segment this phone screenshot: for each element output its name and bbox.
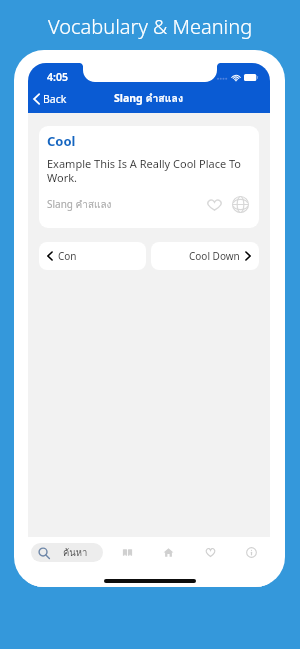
- button[interactable]: ค้นหา: [31, 543, 103, 562]
- staticText: Vocabulary & Meaning: [48, 13, 253, 40]
- staticText: Slang คำสแลง: [47, 197, 112, 213]
- staticText: Example This Is A Really Cool Place To W…: [47, 156, 250, 185]
- staticText: Cool: [47, 132, 76, 150]
- staticText: 4:05: [47, 70, 68, 84]
- button[interactable]: Home: [158, 542, 179, 563]
- button[interactable]: Favourite: [205, 198, 224, 212]
- button[interactable]: Translate: [231, 196, 250, 213]
- staticText: Back: [43, 92, 67, 106]
- button[interactable]: About: [241, 542, 262, 563]
- staticText: ค้นหา: [63, 545, 88, 560]
- staticText: Cool Down: [189, 249, 240, 263]
- staticText: Con: [58, 249, 77, 263]
- button[interactable]: Cool: [39, 126, 259, 228]
- staticText: Slang คำสแลง: [114, 90, 184, 107]
- button[interactable]: Back: [28, 87, 75, 111]
- button[interactable]: Favourites: [200, 542, 221, 563]
- button[interactable]: Cool Down: [151, 242, 259, 270]
- button[interactable]: Con: [39, 242, 146, 270]
- button[interactable]: Dictionary: [117, 542, 138, 563]
